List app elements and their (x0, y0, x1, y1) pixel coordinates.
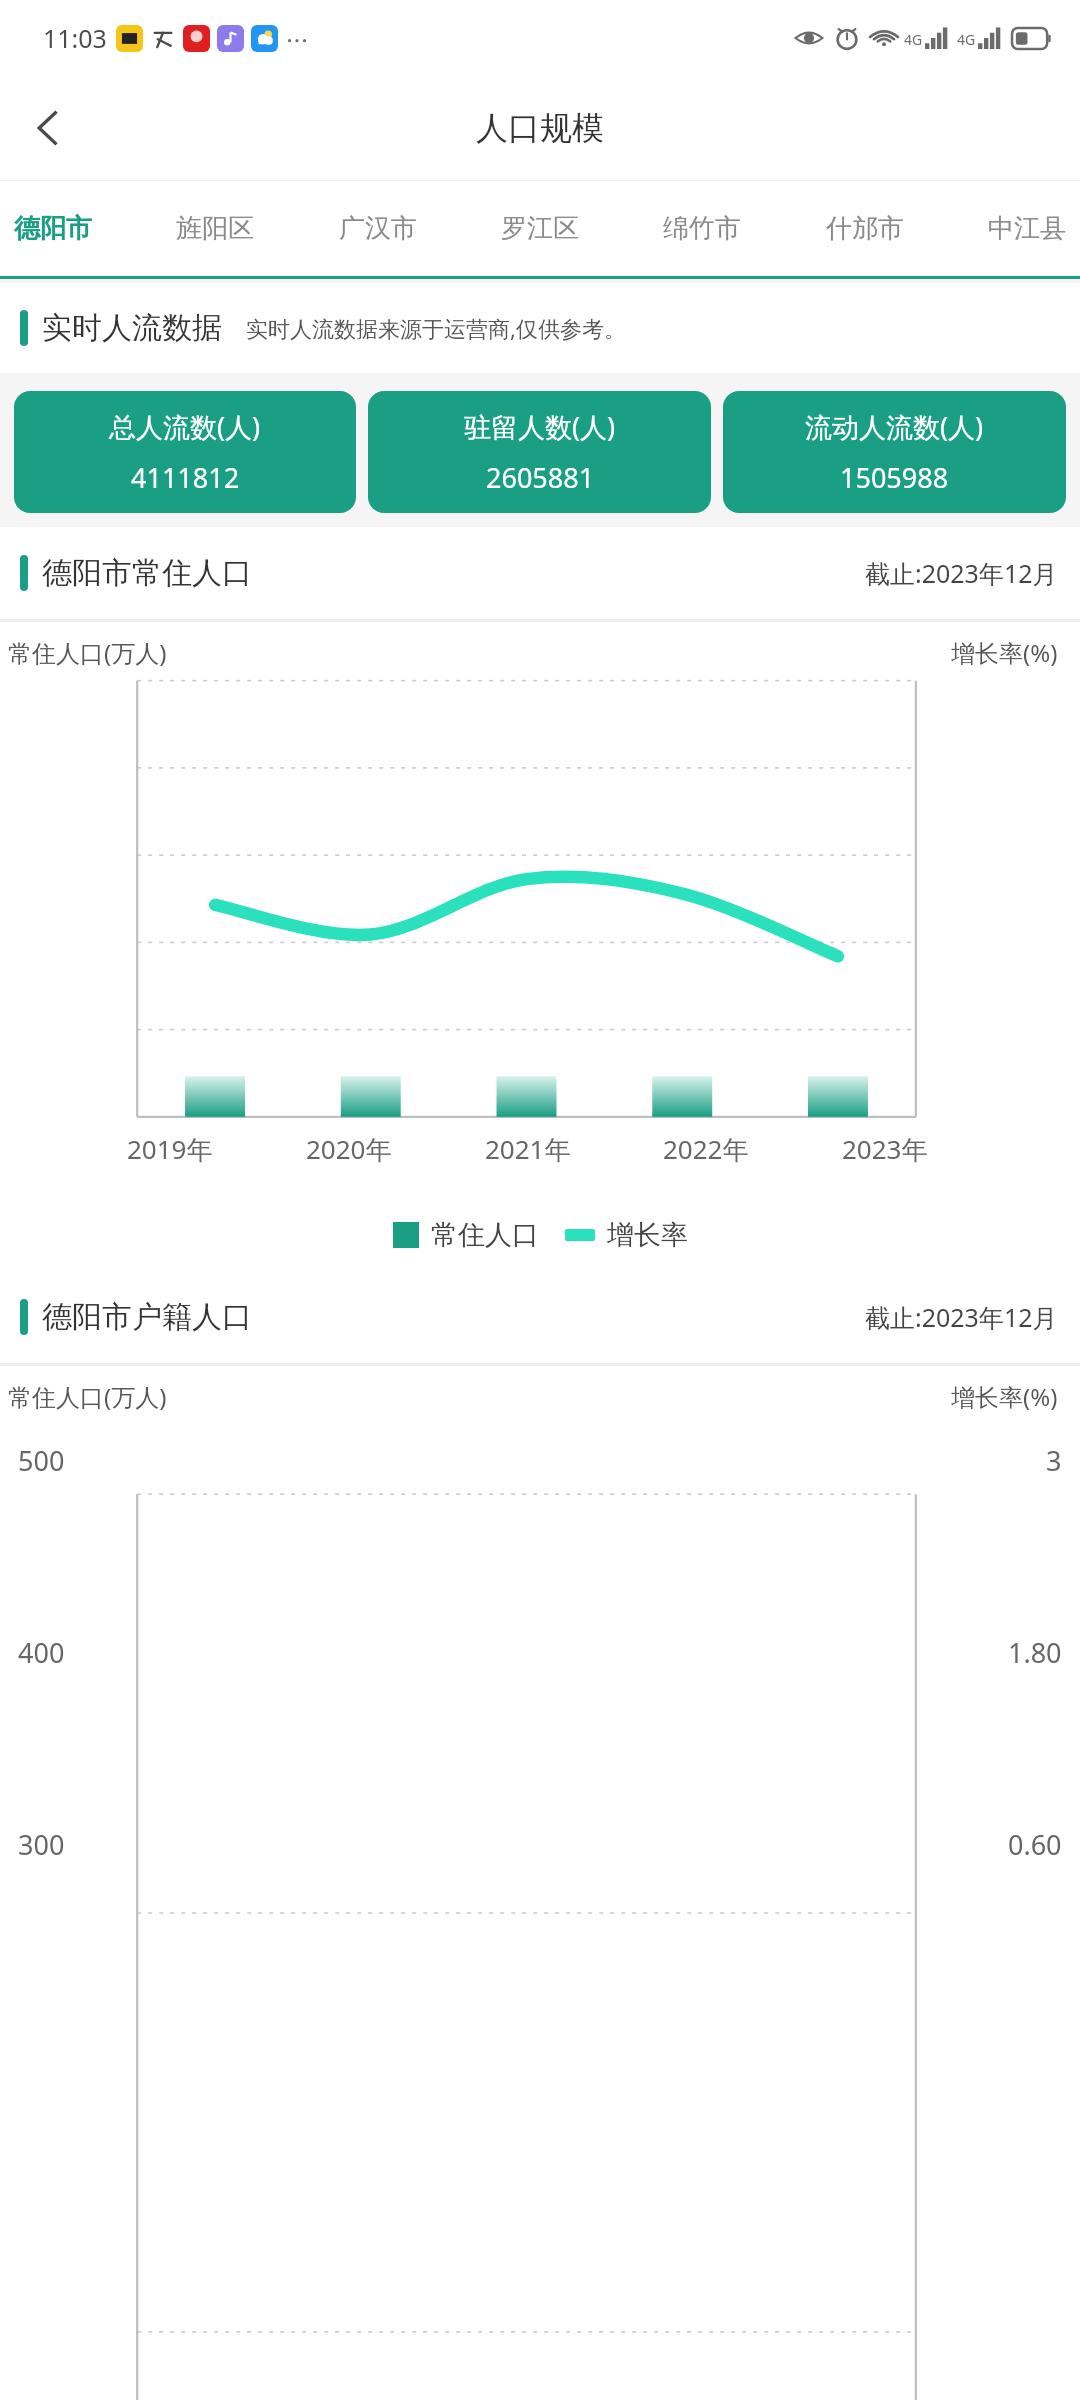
staticText: 总人流数(人) (109, 408, 261, 445)
staticText: 1505988 (840, 459, 949, 496)
staticText: 驻留人数(人) (464, 408, 616, 445)
staticText: 增长率(%) (951, 636, 1058, 669)
staticText: 常住人口 (431, 1218, 539, 1252)
staticText: 截止:2023年12月 (865, 556, 1058, 590)
staticText: 旌阳区 (176, 212, 254, 245)
staticText: 0.60 (1008, 1826, 1062, 1863)
staticText: 常住人口(万人) (8, 1380, 167, 1413)
button[interactable]: 什邡市 (820, 204, 910, 253)
button[interactable]: 广汉市 (333, 204, 423, 253)
staticText: 中江县 (988, 212, 1066, 245)
staticText: 2021年 (485, 1131, 571, 1167)
button[interactable]: 德阳市 (8, 204, 98, 253)
staticText: 德阳市户籍人口 (42, 1298, 252, 1336)
button[interactable]: 中江县 (982, 204, 1072, 253)
staticText: 广汉市 (339, 212, 417, 245)
staticText: 德阳市常住人口 (42, 554, 252, 592)
staticText: 3 (1046, 1442, 1062, 1479)
staticText: 300 (18, 1826, 65, 1863)
button[interactable]: 旌阳区 (170, 204, 260, 253)
staticText: 2020年 (306, 1131, 392, 1167)
staticText: 截止:2023年12月 (865, 1300, 1058, 1334)
button[interactable]: 流动人流数(人) (723, 391, 1066, 513)
staticText: 流动人流数(人) (805, 408, 984, 445)
button[interactable]: Back (14, 95, 80, 161)
staticText: 绵竹市 (663, 212, 741, 245)
staticText: 实时人流数据 (42, 309, 222, 347)
staticText: 2023年 (842, 1131, 928, 1167)
button[interactable]: 罗江区 (495, 204, 585, 253)
staticText: 4G (957, 30, 976, 49)
staticText: 4111812 (131, 459, 240, 496)
staticText: 2019年 (127, 1131, 213, 1167)
staticText: 增长率(%) (951, 1380, 1058, 1413)
staticText: 11:03 (43, 21, 107, 55)
staticText: 4G (904, 30, 923, 49)
staticText: 2022年 (663, 1131, 749, 1167)
staticText: 罗江区 (501, 212, 579, 245)
staticText: 人口规模 (476, 108, 604, 148)
staticText: 400 (18, 1634, 65, 1671)
staticText: 1.80 (1008, 1634, 1062, 1671)
staticText: 500 (18, 1442, 65, 1479)
staticText: 增长率 (607, 1218, 688, 1252)
staticText: 德阳市 (14, 212, 92, 245)
staticText: 常住人口(万人) (8, 636, 167, 669)
staticText: 实时人流数据来源于运营商,仅供参考。 (246, 313, 626, 343)
button[interactable]: 驻留人数(人) (368, 391, 711, 513)
button[interactable]: 总人流数(人) (14, 391, 356, 513)
staticText: 2605881 (486, 459, 595, 496)
button[interactable]: 绵竹市 (657, 204, 747, 253)
staticText: 什邡市 (826, 212, 904, 245)
